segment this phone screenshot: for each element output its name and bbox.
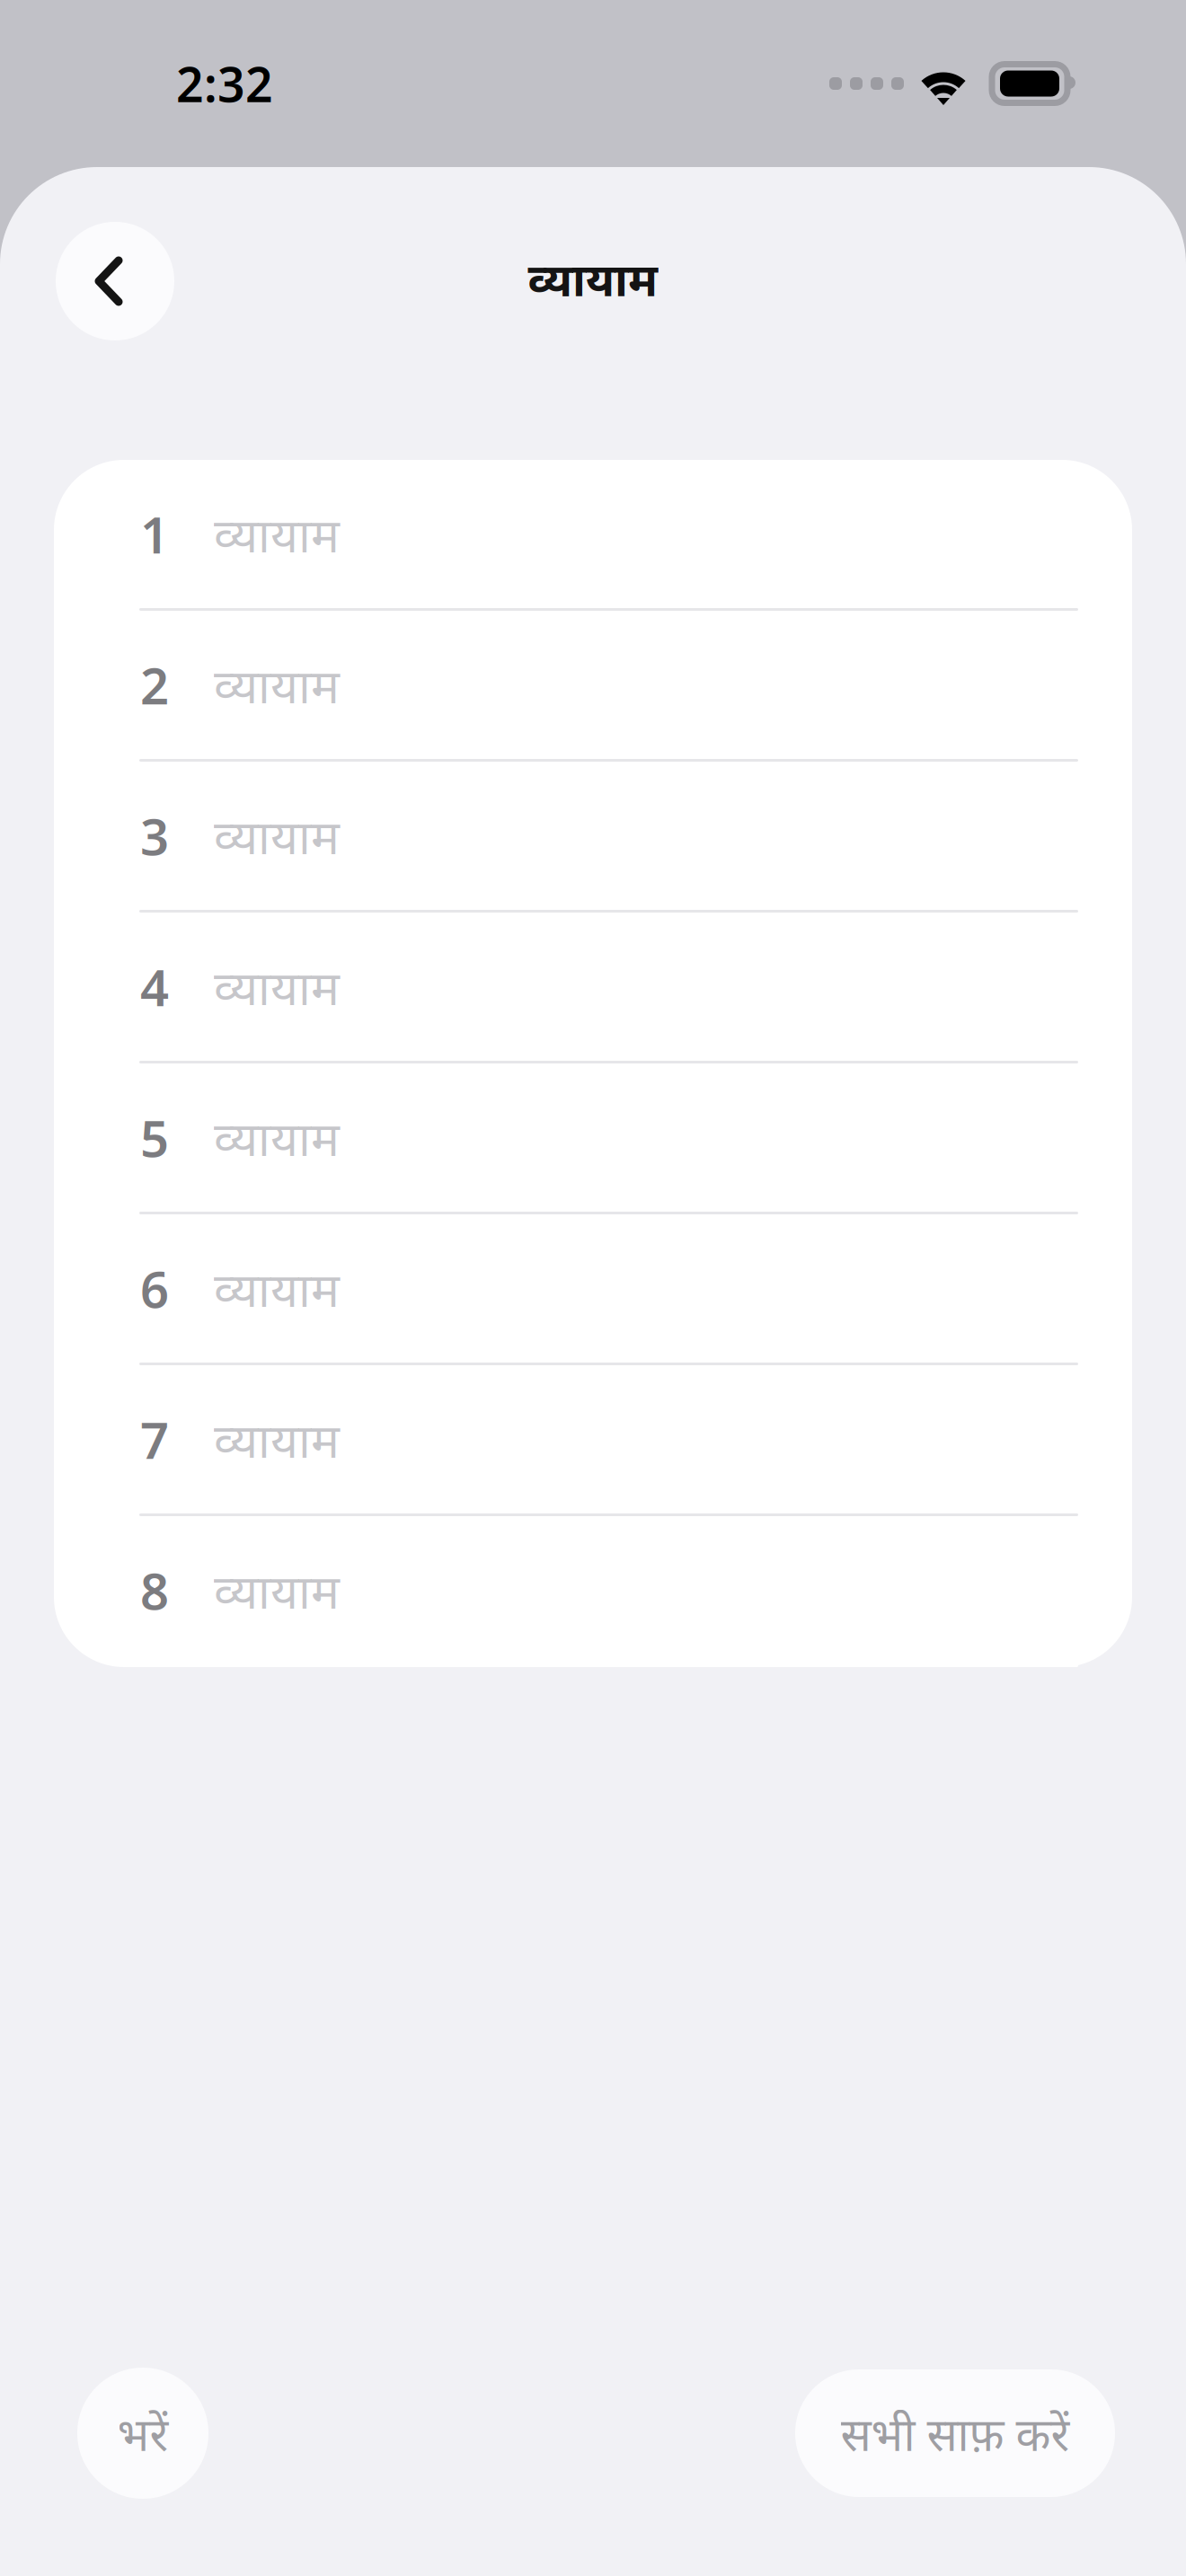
staticText: 2:32 bbox=[176, 52, 273, 115]
staticText: 2 bbox=[140, 651, 169, 718]
button[interactable]: 4 bbox=[54, 913, 1132, 1063]
button[interactable]: 7 bbox=[54, 1365, 1132, 1516]
button[interactable]: 1 bbox=[54, 460, 1132, 611]
staticText: 3 bbox=[140, 802, 169, 869]
staticText: व्यायाम bbox=[214, 955, 340, 1018]
staticText: 7 bbox=[140, 1406, 169, 1473]
staticText: व्यायाम bbox=[214, 502, 340, 566]
button[interactable]: 6 bbox=[54, 1214, 1132, 1365]
staticText: व्यायाम bbox=[214, 1257, 340, 1320]
button[interactable]: 2 bbox=[54, 611, 1132, 762]
staticText: 6 bbox=[140, 1255, 169, 1322]
staticText: 4 bbox=[140, 953, 169, 1020]
staticText: व्यायाम bbox=[528, 248, 658, 309]
staticText: व्यायाम bbox=[214, 1106, 340, 1169]
staticText: 8 bbox=[140, 1557, 169, 1624]
button[interactable]: सभी साफ़ करें bbox=[795, 2369, 1115, 2497]
button[interactable]: भरें bbox=[77, 2368, 208, 2499]
button[interactable]: 5 bbox=[54, 1063, 1132, 1214]
staticText: व्यायाम bbox=[214, 1558, 340, 1622]
button[interactable]: Back bbox=[56, 222, 174, 340]
staticText: भरें bbox=[117, 2403, 168, 2463]
button[interactable]: 3 bbox=[54, 762, 1132, 913]
staticText: सभी साफ़ करें bbox=[841, 2403, 1070, 2463]
staticText: व्यायाम bbox=[214, 1408, 340, 1471]
staticText: व्यायाम bbox=[214, 804, 340, 868]
staticText: 1 bbox=[140, 501, 169, 567]
staticText: 5 bbox=[140, 1104, 169, 1171]
staticText: व्यायाम bbox=[214, 653, 340, 717]
button[interactable]: 8 bbox=[54, 1516, 1132, 1667]
